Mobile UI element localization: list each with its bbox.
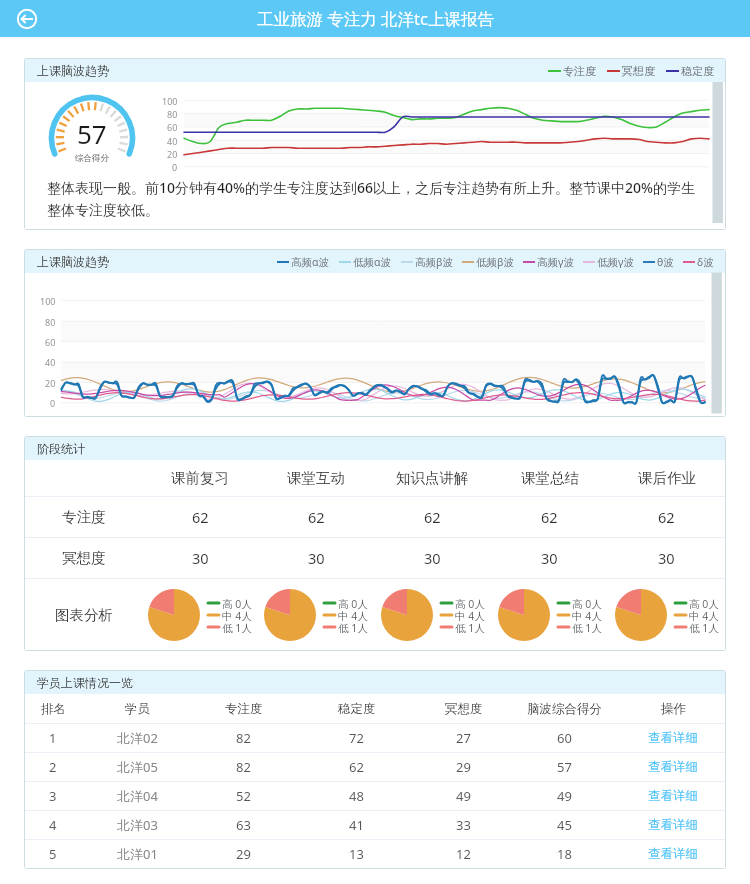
staticText: 60 (45, 336, 56, 348)
staticText: 62 (424, 507, 441, 527)
staticText: 专注度 (225, 701, 263, 717)
button[interactable]: 查看详细 (621, 811, 725, 839)
staticText: 高 0人 (222, 597, 252, 609)
staticText: 低 1人 (689, 621, 719, 633)
staticText: 低频β波 (476, 255, 514, 269)
staticText: 北洋03 (117, 816, 158, 834)
staticText: 学员 (125, 701, 150, 717)
staticText: 82 (236, 758, 251, 776)
staticText: 57 (77, 116, 107, 151)
button[interactable]: 查看详细 (621, 724, 725, 752)
staticText: 查看详细 (648, 788, 698, 804)
staticText: 专注度 (563, 64, 596, 78)
staticText: 100 (40, 295, 56, 307)
staticText: 80 (167, 108, 178, 120)
staticText: 高 0人 (572, 597, 602, 609)
staticText: 中 4人 (338, 609, 368, 621)
staticText: 30 (541, 548, 558, 568)
staticText: 57 (557, 758, 572, 776)
staticText: 课堂总结 (521, 469, 579, 487)
staticText: 低频α波 (353, 255, 392, 269)
staticText: 29 (236, 845, 251, 863)
staticText: 高 0人 (689, 597, 719, 609)
button[interactable]: 查看详细 (621, 840, 725, 868)
staticText: 1 (49, 729, 57, 747)
staticText: 60 (167, 121, 178, 133)
staticText: θ波 (657, 255, 674, 269)
staticText: 48 (349, 787, 364, 805)
staticText: 查看详细 (648, 730, 698, 746)
button[interactable]: 查看详细 (621, 753, 725, 781)
staticText: 30 (192, 548, 209, 568)
staticText: 北洋05 (117, 758, 158, 776)
staticText: 30 (658, 548, 675, 568)
button[interactable]: Back (10, 2, 43, 35)
staticText: 北洋02 (117, 729, 158, 747)
staticText: 49 (456, 787, 471, 805)
staticText: 冥想度 (445, 701, 483, 717)
staticText: 62 (349, 758, 364, 776)
staticText: 上课脑波趋势 (37, 63, 109, 78)
staticText: 3 (49, 787, 57, 805)
staticText: 中 4人 (222, 609, 252, 621)
staticText: 30 (308, 548, 325, 568)
staticText: 高 0人 (338, 597, 368, 609)
staticText: 13 (349, 845, 364, 863)
staticText: 5 (49, 845, 57, 863)
staticText: 冥想度 (622, 64, 655, 78)
staticText: 0 (172, 161, 178, 173)
staticText: 80 (45, 316, 56, 328)
staticText: 高 0人 (455, 597, 485, 609)
staticText: 4 (49, 816, 57, 834)
staticText: 北洋04 (117, 787, 158, 805)
staticText: 12 (456, 845, 471, 863)
staticText: 27 (456, 729, 471, 747)
staticText: 62 (192, 507, 209, 527)
staticText: 查看详细 (648, 846, 698, 862)
staticText: 45 (557, 816, 572, 834)
staticText: 低 1人 (455, 621, 485, 633)
staticText: 查看详细 (648, 759, 698, 775)
staticText: 高频α波 (291, 255, 330, 269)
staticText: 阶段统计 (37, 441, 85, 456)
button[interactable]: 查看详细 (621, 782, 725, 810)
staticText: 49 (557, 787, 572, 805)
staticText: 操作 (661, 701, 686, 717)
staticText: 课前复习 (171, 469, 229, 487)
staticText: 63 (236, 816, 251, 834)
staticText: 课后作业 (638, 469, 696, 487)
staticText: 33 (456, 816, 471, 834)
staticText: 60 (557, 729, 572, 747)
staticText: 上课脑波趋势 (37, 254, 109, 269)
staticText: 82 (236, 729, 251, 747)
staticText: 62 (658, 507, 675, 527)
staticText: 冥想度 (62, 549, 106, 567)
staticText: 100 (162, 95, 178, 107)
staticText: 图表分析 (55, 606, 113, 624)
staticText: 中 4人 (572, 609, 602, 621)
staticText: 整体表现一般。前10分钟有40%的学生专注度达到66以上，之后专注趋势有所上升。… (47, 178, 703, 220)
staticText: 低 1人 (338, 621, 368, 633)
staticText: 29 (456, 758, 471, 776)
staticText: 查看详细 (648, 817, 698, 833)
staticText: 30 (424, 548, 441, 568)
staticText: 40 (45, 356, 56, 368)
staticText: 稳定度 (338, 701, 376, 717)
staticText: 中 4人 (455, 609, 485, 621)
staticText: 专注度 (62, 508, 106, 526)
staticText: 课堂互动 (287, 469, 345, 487)
staticText: 2 (49, 758, 57, 776)
staticText: 低频γ波 (597, 255, 634, 269)
staticText: 低 1人 (222, 621, 252, 633)
staticText: δ波 (697, 255, 714, 269)
staticText: 高频γ波 (537, 255, 574, 269)
staticText: 学员上课情况一览 (37, 675, 133, 690)
staticText: 0 (50, 397, 56, 409)
staticText: 中 4人 (689, 609, 719, 621)
staticText: 高频β波 (415, 255, 453, 269)
staticText: 40 (167, 135, 178, 147)
staticText: 北洋01 (117, 845, 158, 863)
staticText: 排名 (41, 701, 66, 717)
staticText: 72 (349, 729, 364, 747)
staticText: 综合得分 (75, 153, 109, 164)
